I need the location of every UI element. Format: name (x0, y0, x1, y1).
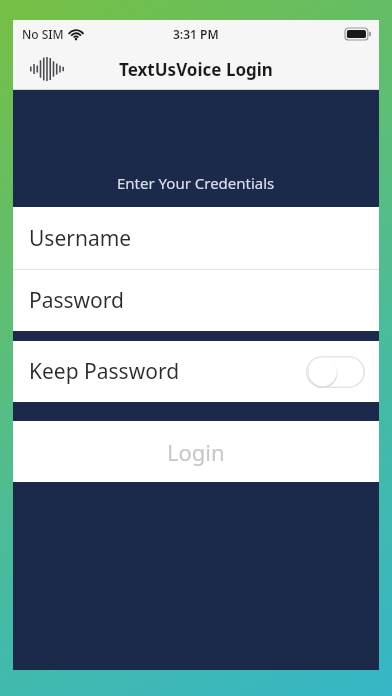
staticText: Login (167, 437, 225, 467)
staticText: Keep Password (29, 357, 180, 386)
button[interactable]: Keep Password toggle (306, 356, 365, 388)
staticText: Enter Your Credentials (117, 173, 275, 193)
staticText: Username (29, 224, 132, 253)
staticText: 3:31 PM (173, 26, 219, 42)
staticText: TextUsVoice Login (119, 58, 273, 81)
button[interactable]: Login (13, 421, 379, 482)
staticText: No SIM (22, 26, 64, 42)
button[interactable]: Voice waveform (27, 54, 67, 84)
staticText: Password (29, 286, 124, 315)
button[interactable]: Password (13, 270, 379, 331)
button[interactable]: Keep Password (13, 341, 379, 402)
button[interactable]: Username (13, 207, 379, 269)
